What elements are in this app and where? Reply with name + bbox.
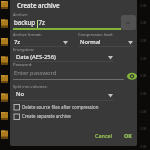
staticText: Normal xyxy=(80,38,101,46)
staticText: Create separate archive xyxy=(22,113,71,119)
staticText: 3.08 xyxy=(140,4,147,8)
button[interactable] xyxy=(13,67,114,81)
staticText: Archive: xyxy=(13,12,28,17)
button[interactable] xyxy=(13,37,69,48)
staticText: 3.08 xyxy=(140,21,147,25)
button[interactable] xyxy=(13,16,121,30)
staticText: 3.08 xyxy=(140,39,147,43)
button[interactable]: OK xyxy=(120,128,137,141)
staticText: 7z xyxy=(14,38,21,46)
button[interactable]: Cancel xyxy=(91,128,117,141)
button[interactable] xyxy=(13,112,123,120)
button[interactable] xyxy=(126,71,137,81)
staticText: Archive format: xyxy=(13,32,42,37)
staticText: 3.08 xyxy=(140,74,147,78)
staticText: Split into volumes: xyxy=(13,84,48,89)
staticText: 3.08 xyxy=(140,145,147,149)
staticText: 3.08 xyxy=(140,92,147,96)
staticText: Data (AES-256) xyxy=(16,53,56,61)
staticText: Create archive xyxy=(17,1,60,9)
staticText: Encryption: xyxy=(13,47,35,52)
staticText: Cancel xyxy=(95,132,113,139)
button[interactable] xyxy=(121,15,136,30)
button[interactable] xyxy=(13,103,123,111)
staticText: Delete source files after compression xyxy=(22,104,99,110)
staticText: backup .7z xyxy=(14,18,45,26)
staticText: 3.08 xyxy=(140,110,147,114)
button[interactable] xyxy=(13,89,114,101)
staticText: 3.08 xyxy=(140,57,147,61)
staticText: No xyxy=(16,90,24,98)
staticText: Password: xyxy=(13,62,33,67)
staticText: OK xyxy=(124,132,132,139)
staticText: Enter password xyxy=(14,69,57,77)
button[interactable] xyxy=(78,37,134,48)
staticText: Compression level: xyxy=(78,32,114,37)
staticText: 3.08 xyxy=(140,127,147,131)
button[interactable] xyxy=(13,52,114,63)
